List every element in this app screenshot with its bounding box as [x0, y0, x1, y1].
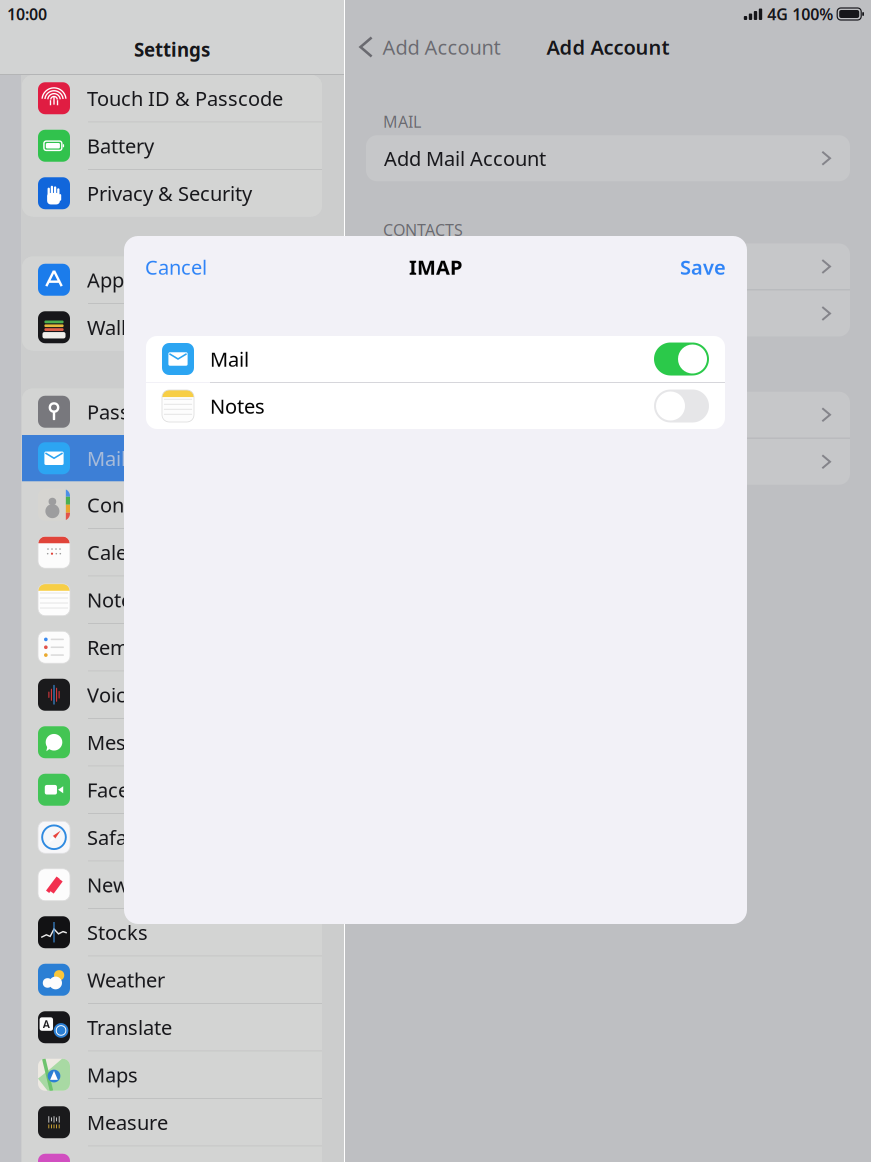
- button[interactable]: News: [22, 861, 322, 908]
- staticText: Add Mail Account: [384, 145, 546, 172]
- button[interactable]: Privacy & Security: [22, 170, 322, 216]
- staticText: Weather: [87, 966, 165, 993]
- staticText: Settings: [134, 37, 210, 62]
- button[interactable]: Cancel: [141, 248, 211, 286]
- staticText: Messages: [87, 729, 180, 756]
- button[interactable]: Add Mail Account: [366, 135, 850, 181]
- button[interactable]: Touch ID & Passcode: [22, 75, 322, 121]
- staticText: IMAP: [409, 254, 462, 280]
- staticText: MAIL: [383, 111, 421, 132]
- button[interactable]: Add Account: [366, 290, 850, 336]
- staticText: News: [87, 871, 139, 898]
- button[interactable]: iCloud: [366, 392, 850, 438]
- staticText: Translate: [87, 1014, 172, 1041]
- staticText: Maps: [87, 1061, 138, 1088]
- staticText: Measure: [87, 1109, 168, 1136]
- staticText: Mail: [87, 445, 126, 472]
- staticText: Privacy & Security: [87, 180, 252, 207]
- button[interactable]: Calendar: [22, 529, 322, 575]
- staticText: 10:00: [7, 3, 47, 25]
- staticText: Wallet: [87, 314, 144, 341]
- button[interactable]: Messages: [22, 719, 322, 765]
- button[interactable]: Contacts: [22, 481, 322, 528]
- button[interactable]: Stocks: [22, 909, 322, 955]
- staticText: Add Account: [546, 34, 669, 60]
- button[interactable]: Maps: [22, 1051, 322, 1098]
- button[interactable]: Passwords: [22, 388, 322, 435]
- staticText: Stocks: [87, 919, 148, 946]
- staticText: Cancel: [145, 254, 207, 280]
- staticText: 4G 100%: [767, 3, 833, 25]
- button[interactable]: Shortcuts: [22, 1146, 322, 1162]
- button[interactable]: Safari: [22, 814, 322, 860]
- staticText: Add Account: [383, 34, 501, 60]
- button[interactable]: Off: [654, 389, 709, 422]
- staticText: A: [43, 1017, 50, 1031]
- staticText: Passwords: [87, 398, 188, 425]
- button[interactable]: Save: [676, 248, 730, 286]
- button[interactable]: Mail: [22, 435, 322, 481]
- staticText: Voice Memos: [87, 681, 212, 708]
- staticText: CONTACTS: [383, 219, 463, 240]
- staticText: Battery: [87, 132, 154, 159]
- button[interactable]: App Store: [22, 256, 322, 303]
- staticText: Notes: [210, 393, 265, 419]
- staticText: App Store: [87, 266, 178, 293]
- button[interactable]: Voice Memos: [22, 671, 322, 718]
- button[interactable]: Measure: [22, 1099, 322, 1145]
- button[interactable]: iCloud: [366, 243, 850, 289]
- staticText: Save: [680, 254, 726, 280]
- button[interactable]: FaceTime: [22, 766, 322, 813]
- staticText: Safari: [87, 824, 140, 851]
- staticText: Reminders: [87, 634, 187, 661]
- staticText: Contacts: [87, 491, 169, 518]
- staticText: Touch ID & Passcode: [87, 85, 283, 112]
- button[interactable]: On: [654, 342, 709, 375]
- button[interactable]: Reminders: [22, 624, 322, 670]
- button[interactable]: Notes: [22, 576, 322, 623]
- button[interactable]: Add Account: [345, 26, 509, 68]
- staticText: Calendar: [87, 539, 170, 566]
- button[interactable]: Battery: [22, 122, 322, 169]
- button[interactable]: Add Account: [366, 439, 850, 485]
- staticText: CALENDARS: [383, 367, 472, 389]
- staticText: FaceTime: [87, 776, 175, 803]
- staticText: Notes: [87, 586, 142, 613]
- staticText: iCloud: [384, 253, 443, 280]
- staticText: Mail: [210, 346, 249, 372]
- button[interactable]: A: [22, 1004, 322, 1050]
- button[interactable]: Weather: [22, 956, 322, 1003]
- button[interactable]: Wallet: [22, 304, 322, 350]
